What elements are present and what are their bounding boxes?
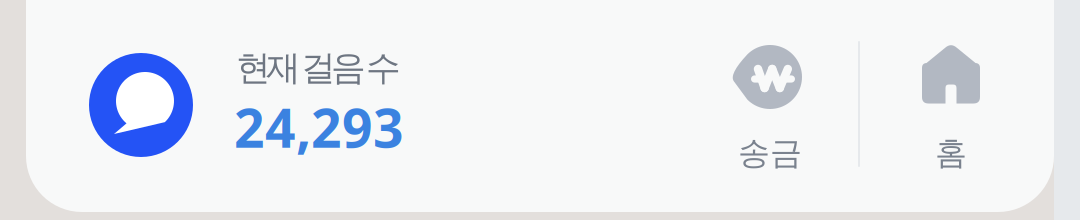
- staticText: 24,293: [234, 91, 404, 163]
- button[interactable]: 송금: [682, 0, 858, 212]
- staticText: 송금: [738, 133, 802, 173]
- button[interactable]: 현재 걸음 수: [236, 0, 516, 212]
- staticText: 현재 걸음 수: [236, 46, 401, 90]
- staticText: 홈: [935, 133, 967, 173]
- button[interactable]: 앱 열기: [89, 53, 193, 157]
- button[interactable]: 홈: [863, 0, 1039, 212]
